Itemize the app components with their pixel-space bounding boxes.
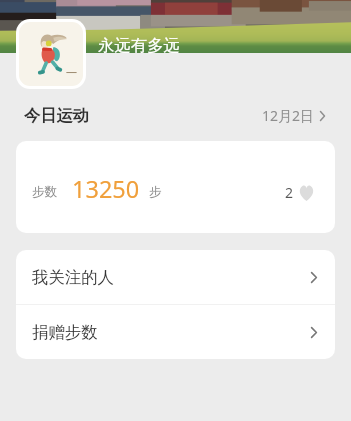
- staticText: 我关注的人: [32, 267, 114, 288]
- button[interactable]: 捐赠步数: [16, 305, 335, 359]
- button[interactable]: 我关注的人: [16, 250, 335, 304]
- staticText: 12月2日: [262, 106, 315, 125]
- button[interactable]: 2: [285, 183, 315, 202]
- staticText: 永远有多远: [98, 35, 180, 56]
- button[interactable]: Profile avatar: [19, 22, 83, 86]
- staticText: 步数: [32, 184, 58, 200]
- staticText: 捐赠步数: [32, 322, 98, 343]
- staticText: 2: [285, 183, 294, 202]
- button[interactable]: 步数: [16, 141, 335, 233]
- staticText: 步: [149, 184, 162, 200]
- staticText: 今日运动: [24, 105, 89, 125]
- staticText: 13250: [72, 173, 140, 205]
- button[interactable]: 12月2日: [262, 106, 326, 125]
